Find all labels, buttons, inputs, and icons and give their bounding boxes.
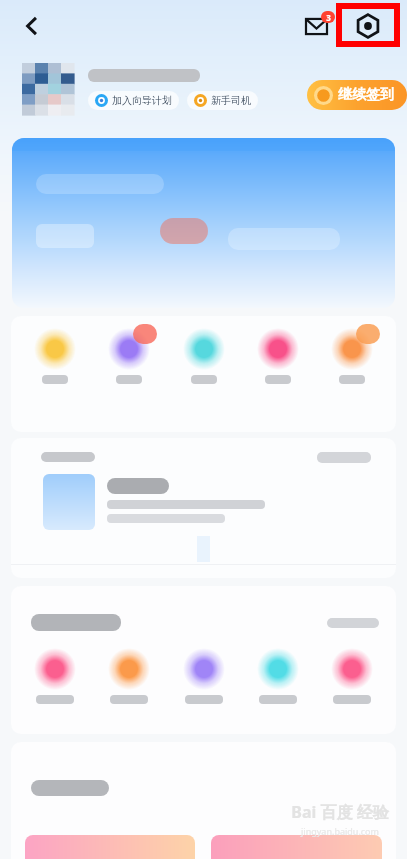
button[interactable] bbox=[25, 835, 195, 859]
button[interactable] bbox=[25, 328, 85, 384]
staticText: 继续签到 bbox=[338, 86, 394, 104]
button[interactable]: Back bbox=[10, 4, 54, 48]
button[interactable] bbox=[248, 328, 308, 384]
button[interactable]: 加入向导计划 bbox=[0, 52, 407, 126]
button[interactable]: 加入向导计划 bbox=[88, 91, 179, 110]
staticText: jingyan.baidu.com bbox=[301, 825, 379, 837]
button[interactable] bbox=[322, 328, 382, 384]
button[interactable] bbox=[12, 138, 395, 308]
staticText: 3 bbox=[326, 12, 331, 23]
button[interactable]: 继续签到 bbox=[307, 80, 407, 110]
button[interactable]: Settings bbox=[337, 4, 399, 48]
button[interactable]: Messages bbox=[295, 5, 337, 47]
button[interactable] bbox=[248, 648, 308, 704]
button[interactable] bbox=[25, 648, 85, 704]
button[interactable]: 新手司机 bbox=[187, 91, 258, 110]
button[interactable] bbox=[99, 328, 159, 384]
staticText: Bai 百度 经验 bbox=[291, 801, 389, 823]
button[interactable] bbox=[211, 835, 382, 859]
button[interactable] bbox=[174, 648, 234, 704]
staticText: 新手司机 bbox=[211, 94, 251, 107]
button[interactable] bbox=[99, 648, 159, 704]
staticText: 加入向导计划 bbox=[112, 94, 172, 107]
button[interactable] bbox=[174, 328, 234, 384]
button[interactable] bbox=[322, 648, 382, 704]
button[interactable] bbox=[11, 438, 396, 578]
